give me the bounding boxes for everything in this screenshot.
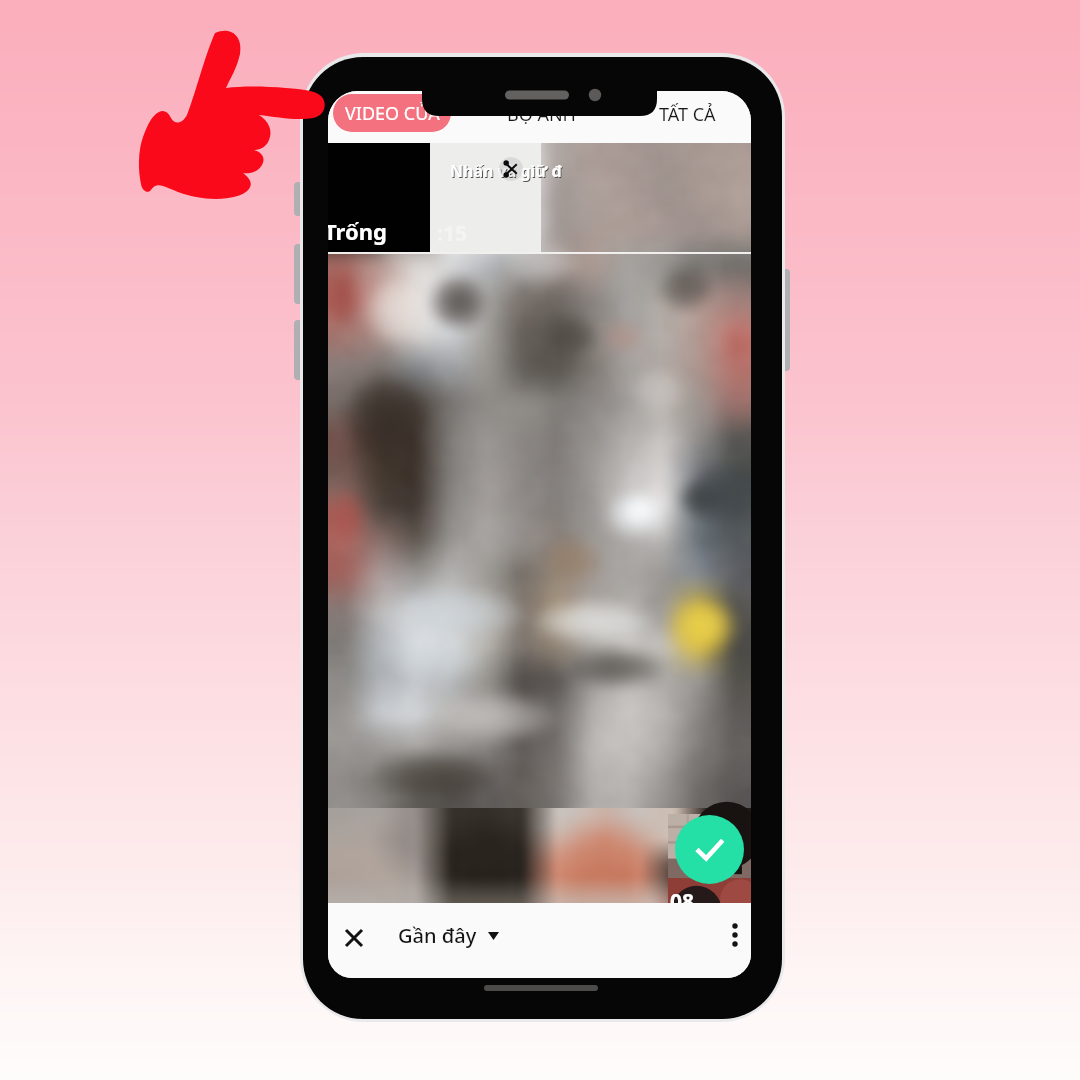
button[interactable]: Trống [328, 143, 430, 252]
button[interactable]: Confirm selection [675, 815, 744, 884]
staticText: Trống [328, 216, 387, 246]
staticText: VIDEO CỦA [345, 101, 440, 126]
button[interactable]: BỘ ẢNH [496, 91, 586, 140]
button[interactable] [668, 814, 751, 911]
button[interactable]: :15 [430, 143, 541, 252]
button[interactable]: Gần đây [392, 915, 505, 955]
button[interactable]: More options [715, 915, 751, 955]
staticText: :15 [437, 219, 467, 248]
staticText: 08 [670, 887, 695, 916]
staticText: TẤT CẢ [659, 102, 716, 127]
staticText: Gần đây [398, 922, 477, 949]
staticText: Nhấn và giữ đ [451, 161, 563, 183]
button[interactable]: Close [334, 918, 374, 958]
button[interactable]: Trim video [499, 157, 523, 181]
button[interactable]: VIDEO CỦA [333, 94, 451, 132]
staticText: Nhấn và giữ đ [450, 160, 562, 182]
button[interactable]: TẤT CẢ [656, 91, 718, 140]
staticText: BỘ ẢNH [507, 102, 576, 127]
